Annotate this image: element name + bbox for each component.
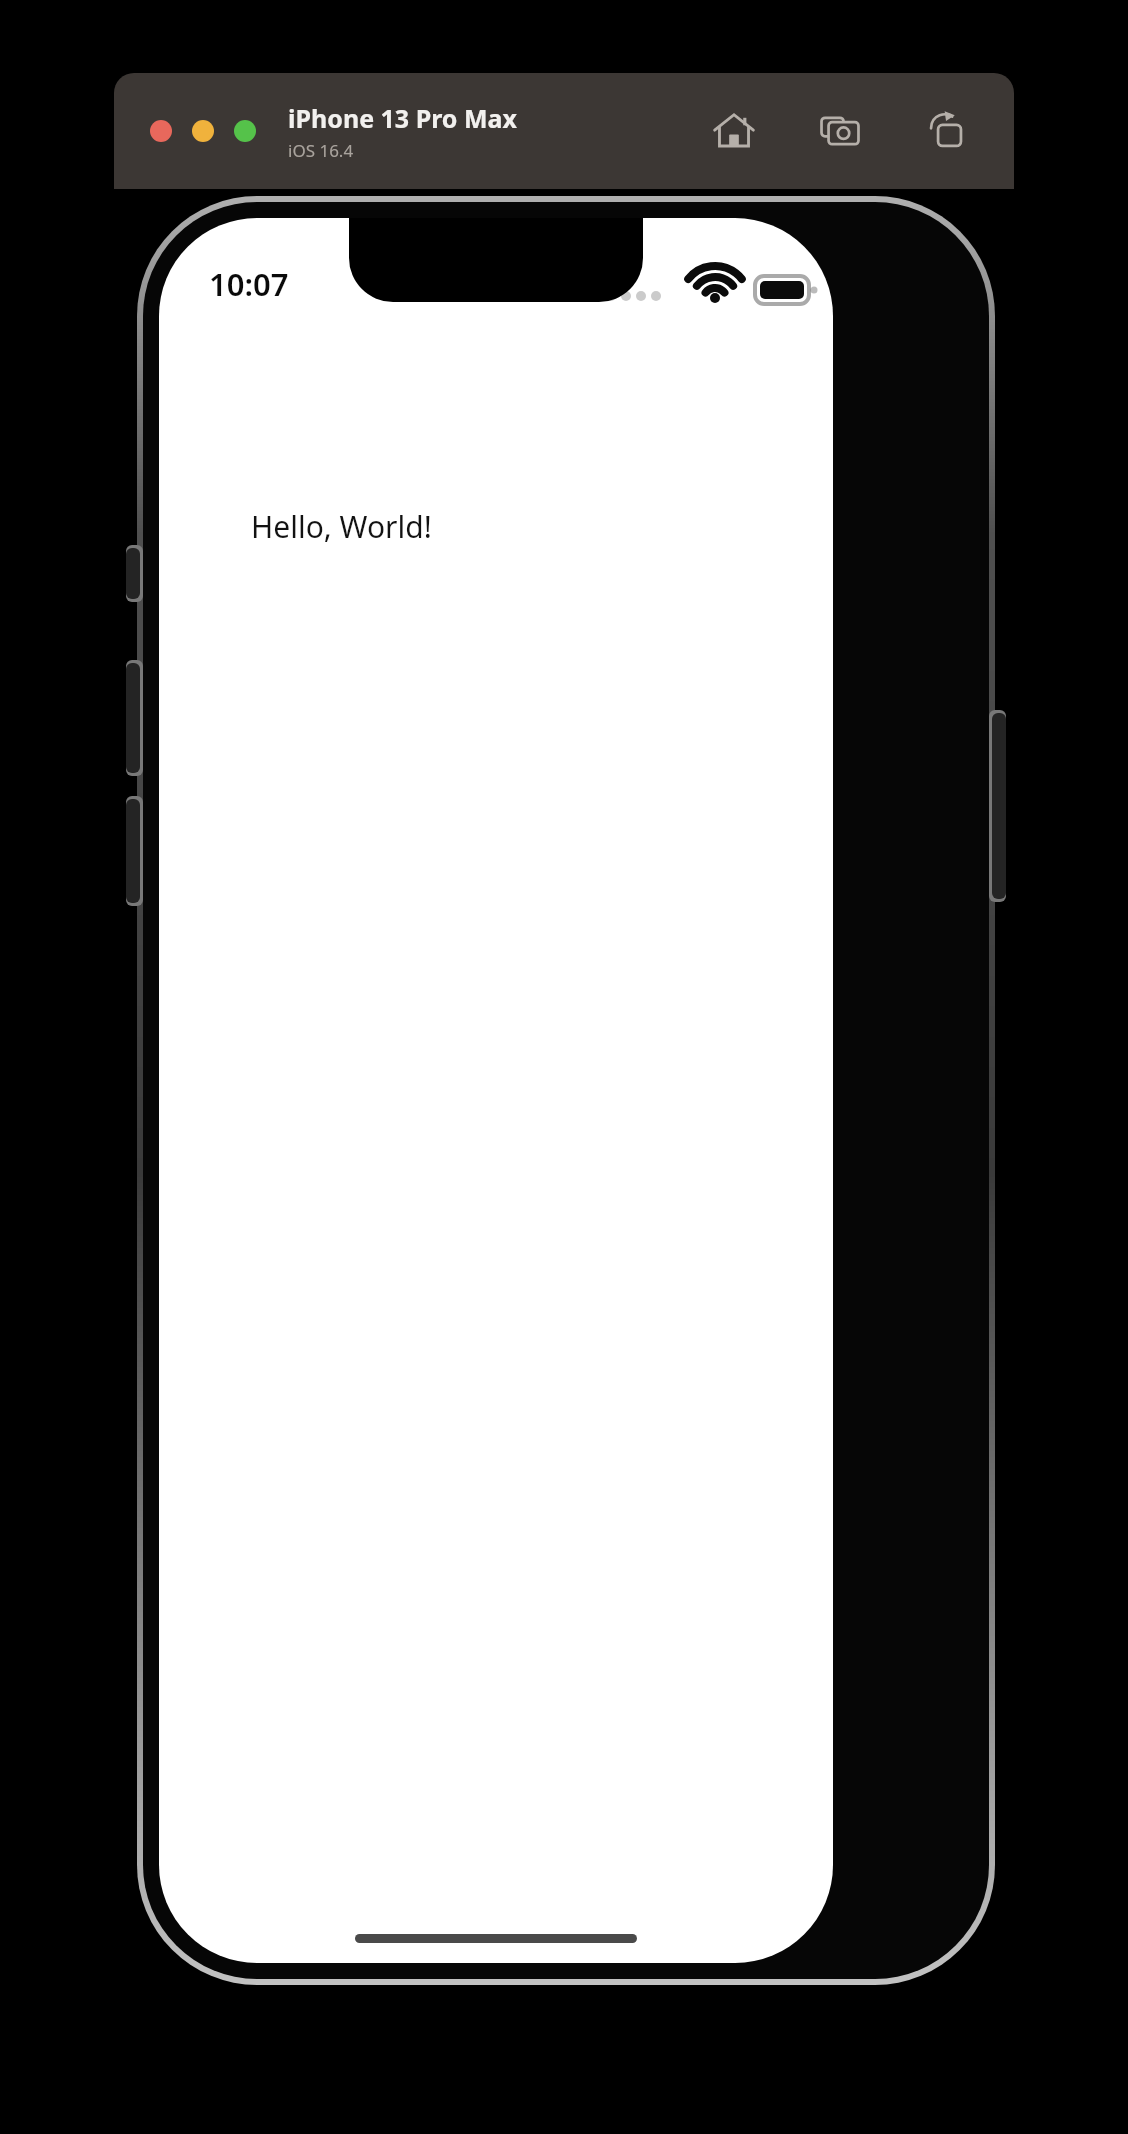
staticText: iOS 16.4 <box>288 139 354 162</box>
button[interactable]: Home <box>706 103 762 159</box>
staticText: Hello, World! <box>251 506 432 547</box>
button[interactable]: Minimize window <box>192 120 214 142</box>
button[interactable]: Zoom window <box>234 120 256 142</box>
staticText: iPhone 13 Pro Max <box>288 101 517 135</box>
staticText: 10:07 <box>209 263 289 305</box>
button[interactable]: Close window <box>150 120 172 142</box>
button[interactable]: Screenshot <box>812 103 868 159</box>
button[interactable]: Rotate device <box>918 103 974 159</box>
